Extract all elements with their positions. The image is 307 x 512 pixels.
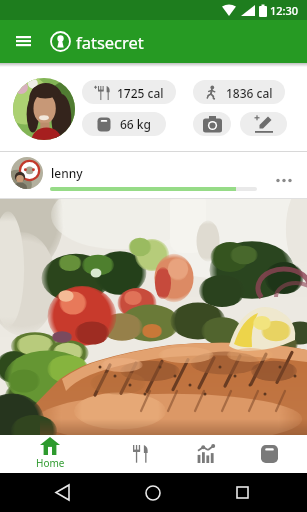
staticText: 1725 cal <box>117 85 164 101</box>
button[interactable] <box>0 199 307 435</box>
button[interactable]: lenny <box>0 152 307 199</box>
button[interactable] <box>218 473 266 512</box>
staticText: 66 kg <box>120 116 151 132</box>
button[interactable] <box>240 112 287 136</box>
button[interactable]: Home <box>26 435 74 473</box>
staticText: fatsecret <box>76 31 144 53</box>
button[interactable]: 66 kg <box>82 112 166 136</box>
staticText: Home <box>36 456 65 470</box>
button[interactable]: 1725 cal <box>82 80 176 104</box>
button[interactable] <box>245 435 293 473</box>
button[interactable] <box>129 473 177 512</box>
button[interactable] <box>13 78 75 140</box>
button[interactable] <box>38 473 86 512</box>
button[interactable]: 1836 cal <box>193 80 285 104</box>
button[interactable]: fatsecret <box>50 20 144 63</box>
staticText: lenny <box>51 165 83 181</box>
button[interactable] <box>182 435 230 473</box>
button[interactable] <box>193 112 231 136</box>
staticText: 1836 cal <box>226 85 273 101</box>
button[interactable] <box>115 435 163 473</box>
staticText: 12:30 <box>270 3 299 18</box>
button[interactable] <box>8 26 38 56</box>
